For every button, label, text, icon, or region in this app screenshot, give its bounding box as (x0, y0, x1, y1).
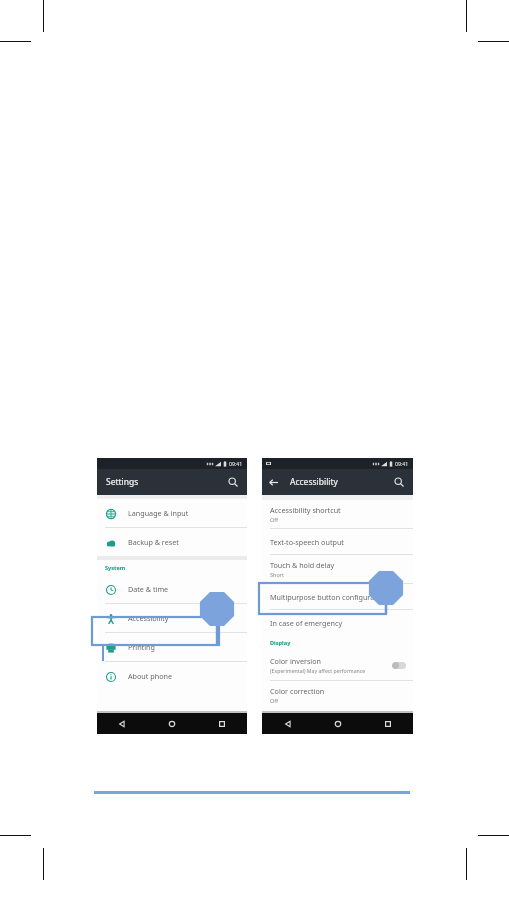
button[interactable]: Color inversion (262, 650, 413, 680)
button[interactable]: Touch & hold delay (262, 555, 413, 583)
staticText: 09:41 (229, 460, 243, 467)
button[interactable]: Text-to-speech output (262, 529, 413, 554)
staticText: Language & input (128, 508, 189, 518)
button[interactable]: Multipurpose button configuration (262, 584, 413, 609)
button[interactable]: About phone (97, 662, 247, 690)
staticText: 09:41 (395, 460, 409, 467)
button[interactable]: Back (97, 713, 147, 734)
staticText: Settings (106, 476, 139, 488)
staticText: Accessibility (128, 613, 169, 623)
button[interactable]: Search (389, 472, 409, 492)
staticText: Multipurpose button configuration (270, 592, 388, 602)
staticText: Text-to-speech output (270, 537, 344, 547)
button[interactable]: Home (313, 713, 363, 734)
staticText: (Experimental) May affect performance (270, 667, 366, 674)
staticText: Touch & hold delay (270, 560, 335, 570)
button[interactable]: Backup & reset (97, 528, 247, 556)
staticText: Off (270, 697, 279, 704)
button[interactable]: Recents (197, 713, 247, 734)
staticText: Accessibility (290, 476, 338, 488)
staticText: System (105, 564, 126, 572)
button[interactable]: Language & input (97, 499, 247, 527)
button[interactable]: Recents (363, 713, 413, 734)
button[interactable]: Accessibility (97, 604, 247, 632)
button[interactable]: Home (147, 713, 197, 734)
button[interactable]: In case of emergency (262, 610, 413, 635)
staticText: Date & time (128, 584, 169, 594)
staticText: Backup & reset (128, 537, 179, 547)
staticText: In case of emergency (270, 618, 343, 628)
button[interactable]: Back (262, 713, 313, 734)
staticText: About phone (128, 671, 172, 681)
button[interactable]: Printing (97, 633, 247, 661)
button[interactable]: Search (223, 472, 243, 492)
staticText: Short (270, 571, 285, 578)
button[interactable]: Color correction (262, 681, 413, 709)
staticText: Color correction (270, 686, 325, 696)
staticText: Off (270, 516, 279, 523)
staticText: Printing (128, 642, 155, 652)
button[interactable]: Settings (97, 469, 247, 495)
staticText: Accessibility shortcut (270, 505, 341, 515)
staticText: Color inversion (270, 656, 321, 666)
button[interactable]: Date & time (97, 575, 247, 603)
button[interactable]: Back (262, 471, 284, 493)
button[interactable]: Accessibility shortcut (262, 500, 413, 528)
staticText: Display (270, 639, 291, 647)
